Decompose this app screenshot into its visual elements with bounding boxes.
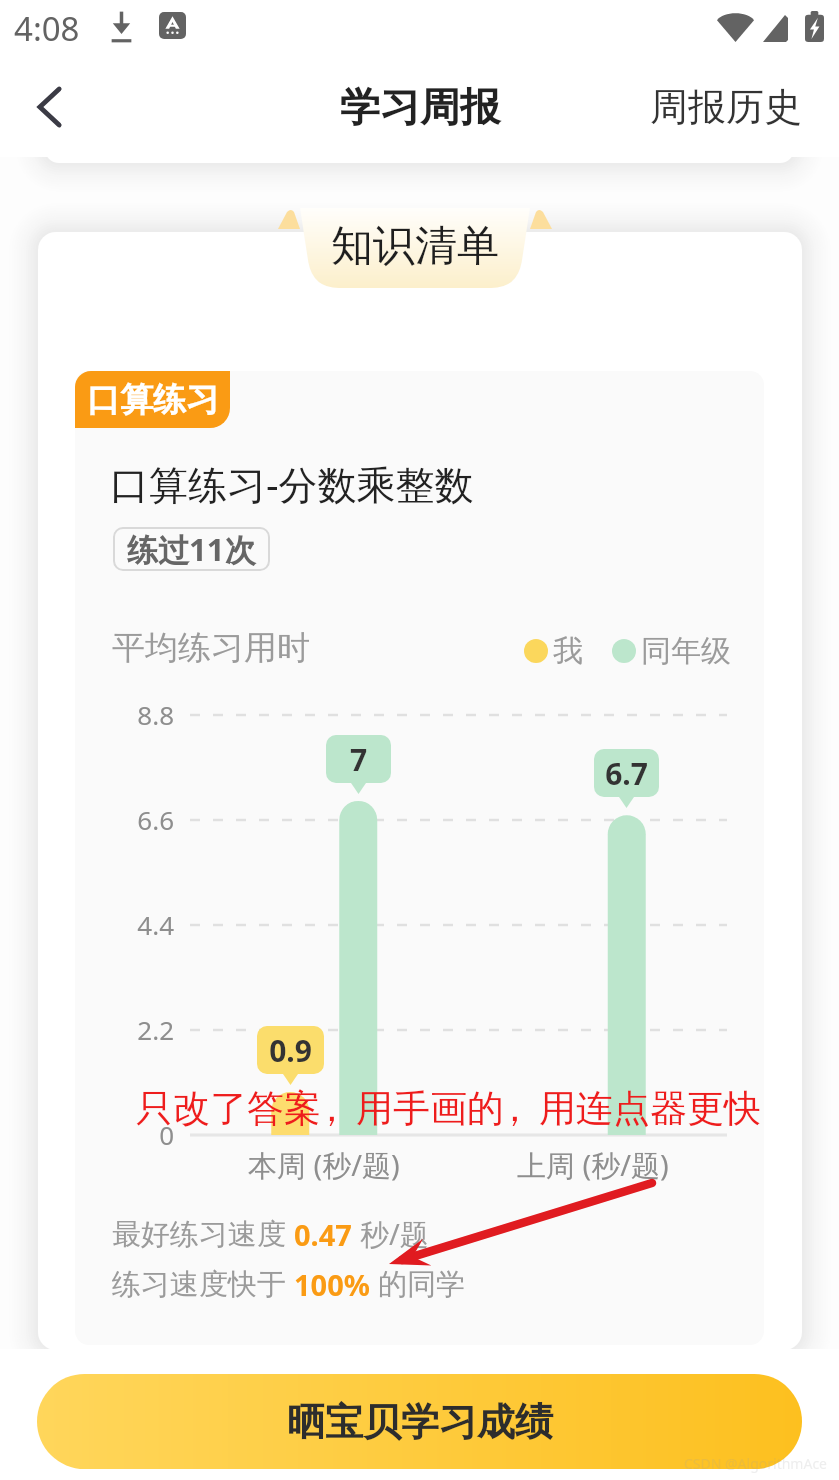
staticText: 100%: [294, 1265, 370, 1304]
staticText: 练习速度快于: [112, 1266, 286, 1303]
staticText: 用连点器更快: [539, 1085, 761, 1132]
staticText: 只改了答案: [136, 1085, 321, 1132]
staticText: 8.8: [137, 697, 174, 732]
staticText: 最好练习速度: [112, 1216, 286, 1253]
staticText: 的同学: [378, 1266, 465, 1303]
staticText: 上周 (秒/题): [517, 1145, 669, 1185]
button[interactable]: 周报历史: [626, 56, 839, 157]
button[interactable]: 晒宝贝学习成绩: [37, 1374, 802, 1469]
button[interactable]: Back: [0, 56, 99, 157]
staticText: 7: [326, 739, 391, 780]
staticText: 平均练习用时: [112, 627, 310, 669]
staticText: 6.6: [137, 802, 174, 837]
staticText: 练过11次: [127, 528, 256, 570]
staticText: 本周 (秒/题): [248, 1145, 400, 1185]
staticText: ，: [313, 1085, 348, 1132]
staticText: 用手画的: [356, 1085, 504, 1132]
staticText: 知识清单: [331, 220, 499, 273]
staticText: 周报历史: [650, 83, 802, 131]
staticText: 0.9: [257, 1030, 324, 1071]
staticText: 4.4: [137, 907, 174, 942]
staticText: 晒宝贝学习成绩: [287, 1398, 553, 1446]
staticText: 6.7: [594, 753, 659, 794]
staticText: 2.2: [137, 1012, 174, 1047]
staticText: 口算练习-分数乘整数: [110, 457, 474, 510]
staticText: 0.47: [294, 1215, 352, 1254]
staticText: 口算练习: [87, 379, 219, 421]
staticText: 0: [159, 1117, 174, 1152]
staticText: CSDN @AlgorithmAce: [684, 1454, 828, 1473]
staticText: 秒/题: [360, 1214, 429, 1254]
staticText: 同年级: [641, 632, 731, 670]
staticText: 我: [553, 632, 583, 670]
staticText: 4:08: [14, 6, 80, 51]
staticText: 学习周报: [340, 82, 500, 132]
staticText: ，: [496, 1085, 531, 1132]
button[interactable]: 口算练习: [75, 371, 230, 428]
